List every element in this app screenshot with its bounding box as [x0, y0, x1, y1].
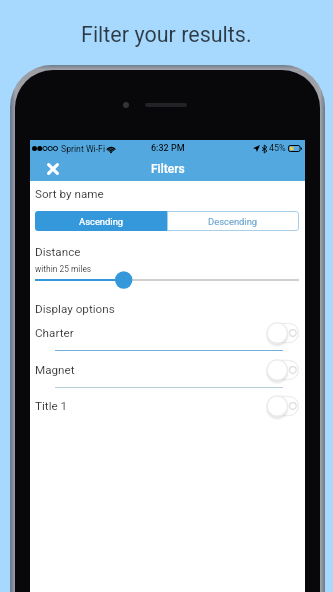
- staticText: Charter: [35, 326, 74, 340]
- button[interactable]: Descending: [167, 211, 299, 231]
- staticText: Sort by name: [35, 187, 104, 201]
- staticText: Filters: [151, 162, 185, 176]
- staticText: Sprint Wi-Fi: [61, 144, 106, 154]
- staticText: within 25 miles: [35, 264, 92, 274]
- button[interactable]: Title 1: [30, 393, 305, 419]
- staticText: 6:32 PM: [151, 143, 185, 154]
- staticText: Magnet: [35, 363, 75, 377]
- button[interactable]: Ascending: [35, 211, 167, 231]
- staticText: Display options: [35, 302, 115, 316]
- staticText: Distance: [35, 245, 81, 259]
- staticText: 45%: [269, 143, 286, 154]
- staticText: Filter your results.: [81, 22, 252, 47]
- staticText: Ascending: [79, 216, 124, 227]
- button[interactable]: Close filters: [41, 157, 65, 181]
- staticText: Title 1: [35, 399, 68, 413]
- staticText: Descending: [208, 216, 258, 227]
- button[interactable]: Magnet: [30, 357, 305, 383]
- button[interactable]: Charter: [30, 320, 305, 346]
